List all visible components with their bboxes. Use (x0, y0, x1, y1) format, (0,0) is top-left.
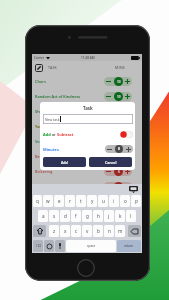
button[interactable]: Increase (123, 152, 132, 161)
staticText: space (87, 244, 96, 248)
staticText: j (108, 213, 110, 219)
staticText: 10 (117, 80, 121, 84)
staticText: s (53, 213, 56, 219)
staticText: w (46, 198, 50, 204)
button[interactable]: j (104, 210, 114, 222)
button[interactable]: x (60, 225, 70, 237)
button[interactable]: h (93, 210, 103, 222)
button[interactable]: n (104, 225, 114, 237)
button[interactable]: 123 (33, 240, 43, 252)
button[interactable]: Bickering (32, 179, 142, 194)
button[interactable]: w (43, 195, 53, 207)
button[interactable]: New task (35, 64, 43, 72)
button[interactable]: d (60, 210, 70, 222)
button[interactable]: Being rude (32, 149, 142, 164)
staticText: Yard work (35, 124, 54, 129)
button[interactable]: Increase (123, 137, 132, 146)
button[interactable]: Increase (123, 92, 132, 101)
button[interactable]: c (71, 225, 81, 237)
button[interactable]: Yard work (32, 119, 142, 134)
button[interactable]: Veggies (32, 134, 142, 149)
button[interactable]: s (49, 210, 59, 222)
staticText: a (42, 213, 45, 219)
staticText: Add (61, 160, 68, 165)
button[interactable]: Random Act of Kindness (32, 89, 142, 104)
staticText: p (135, 198, 138, 204)
staticText: o (124, 198, 127, 204)
button[interactable]: New task (32, 61, 142, 74)
button[interactable]: Increase (123, 182, 132, 191)
button[interactable]: Increase (123, 77, 132, 86)
button[interactable]: Add or subtract toggle (120, 131, 133, 138)
button[interactable]: q (33, 195, 42, 207)
button[interactable]: o (120, 195, 130, 207)
button[interactable]: u (98, 195, 108, 207)
button[interactable]: Decrease (104, 137, 113, 146)
button[interactable]: l (126, 210, 136, 222)
button[interactable]: Decrease (104, 167, 113, 176)
button[interactable]: Bickering (32, 164, 142, 179)
staticText: r (69, 198, 71, 204)
button[interactable]: Decrease (104, 77, 113, 86)
button[interactable]: a (38, 210, 48, 222)
button[interactable]: Decrease (104, 122, 113, 131)
staticText: Subtract (57, 132, 74, 137)
button[interactable]: Shift (33, 225, 46, 237)
button[interactable]: Dictate (55, 240, 65, 252)
staticText: e (58, 198, 61, 204)
staticText: 5 (118, 155, 120, 159)
button[interactable]: f (71, 210, 81, 222)
button[interactable]: Increase (123, 107, 132, 116)
staticText: g (86, 213, 89, 219)
staticText: return (124, 244, 134, 248)
button[interactable]: New task (43, 114, 133, 124)
staticText: Random Act of Kindness (35, 94, 81, 99)
button[interactable]: Decrease (104, 107, 113, 116)
button[interactable]: Decrease (104, 182, 113, 191)
button[interactable]: r (65, 195, 75, 207)
staticText: Minutes (43, 147, 59, 152)
staticText: b (97, 228, 100, 234)
staticText: 123 (36, 244, 41, 248)
button[interactable]: t (76, 195, 86, 207)
button[interactable]: Delete (128, 225, 141, 237)
button[interactable]: Hide keyboard (129, 186, 138, 193)
button[interactable]: b (93, 225, 103, 237)
staticText: v (86, 228, 89, 234)
button[interactable]: Showering (32, 104, 142, 119)
staticText: or (52, 132, 57, 137)
button[interactable]: Decrease (104, 92, 113, 101)
staticText: New task (45, 117, 60, 122)
button[interactable]: Increase (123, 122, 132, 131)
button[interactable]: Increase (124, 145, 133, 153)
button[interactable]: return (117, 240, 141, 252)
staticText: d (64, 213, 67, 219)
button[interactable]: Decrease (105, 145, 114, 153)
button[interactable]: Chors (32, 74, 142, 89)
staticText: z (53, 228, 56, 234)
button[interactable]: v (82, 225, 92, 237)
button[interactable]: p (131, 195, 141, 207)
staticText: t (80, 198, 82, 204)
button[interactable]: z (49, 225, 59, 237)
staticText: Bickering (35, 169, 53, 174)
button[interactable]: space (66, 240, 116, 252)
button[interactable]: e (54, 195, 64, 207)
staticText: h (97, 213, 100, 219)
button[interactable]: Increase (123, 167, 132, 176)
button[interactable]: Add (43, 157, 86, 167)
button[interactable]: g (82, 210, 92, 222)
button[interactable]: Emoji (44, 240, 54, 252)
button[interactable]: Cancel (89, 157, 132, 167)
staticText: 10 (117, 95, 121, 99)
staticText: 5 (118, 170, 120, 174)
button[interactable]: m (115, 225, 125, 237)
button[interactable]: i (109, 195, 119, 207)
button[interactable]: y (87, 195, 97, 207)
button[interactable]: Decrease (104, 152, 113, 161)
button[interactable]: k (115, 210, 125, 222)
